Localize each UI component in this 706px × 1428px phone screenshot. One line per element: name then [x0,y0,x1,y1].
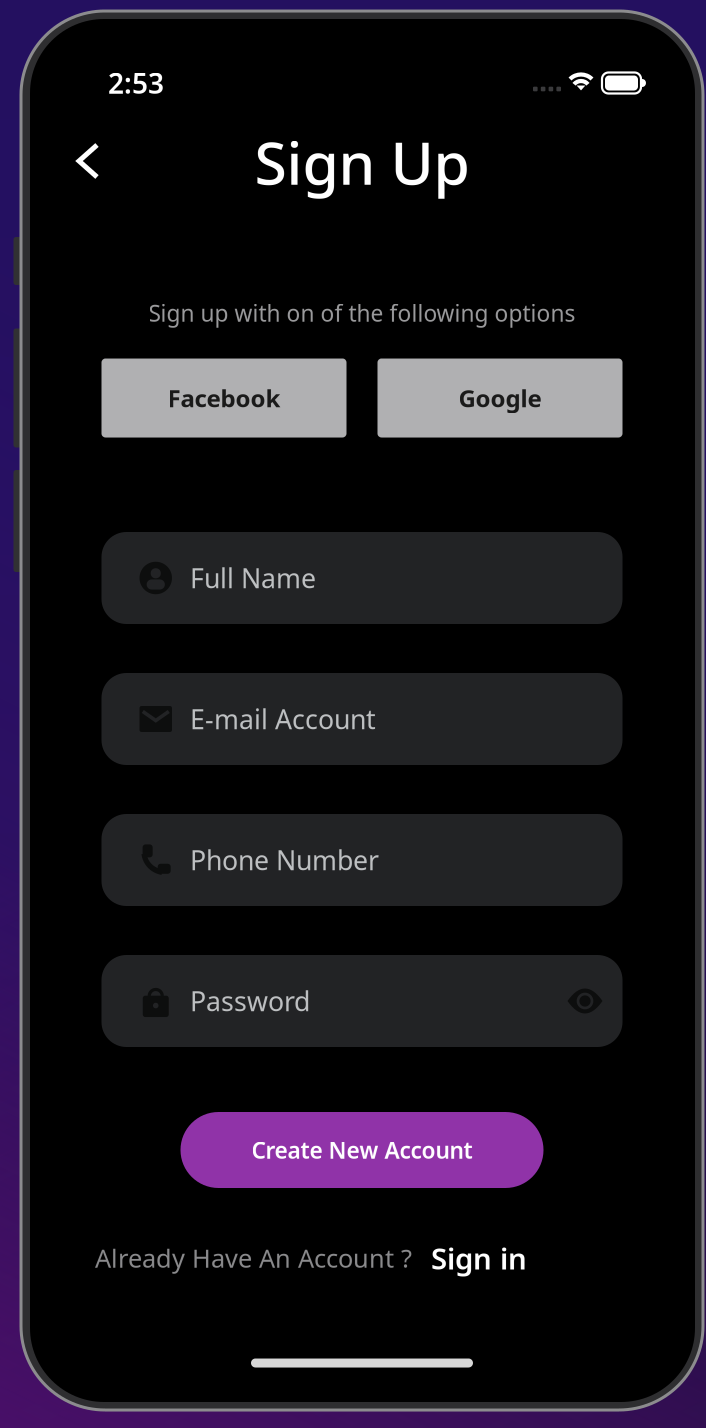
staticText: Sign up with on of the following options [148,298,575,328]
button[interactable]: Full Name [101,532,622,624]
staticText: Create New Account [251,1135,472,1165]
staticText: Already Have An Account ? [95,1241,412,1275]
button[interactable]: Sign in [431,1238,527,1277]
staticText: Full Name [190,560,316,596]
button[interactable]: Phone Number [101,814,622,906]
button[interactable]: E-mail Account [101,673,622,765]
staticText: Google [458,382,541,414]
staticText: E-mail Account [190,701,376,737]
button[interactable]: Password [101,955,622,1047]
staticText: Phone Number [190,842,379,878]
staticText: Facebook [167,382,280,414]
staticText: Sign in [431,1238,527,1277]
button[interactable]: Facebook [101,358,346,437]
button[interactable]: Create New Account [180,1112,543,1188]
staticText: Sign Up [254,123,469,201]
button[interactable]: Back [61,133,115,189]
button[interactable]: Google [377,358,622,437]
staticText: Password [190,983,310,1019]
staticText: 2:53 [108,64,164,102]
